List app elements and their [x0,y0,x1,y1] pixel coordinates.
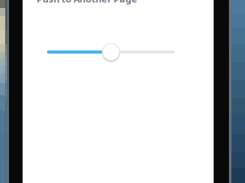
staticText: Push to Another Page [36,0,137,5]
button[interactable]: Push to Another Page [36,0,137,5]
button[interactable]: Value slider [37,38,185,66]
